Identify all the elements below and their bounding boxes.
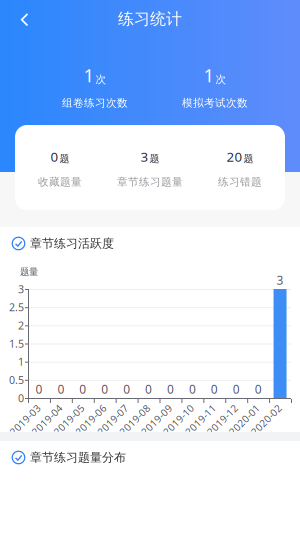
staticText: 0: [123, 381, 130, 397]
staticText: 题: [243, 152, 253, 165]
staticText: 0: [167, 381, 174, 397]
staticText: 1: [18, 354, 24, 369]
staticText: 2.5: [9, 300, 24, 314]
staticText: 题量: [20, 266, 38, 278]
staticText: 章节练习题量: [117, 175, 183, 189]
staticText: 1.5: [9, 336, 24, 351]
staticText: 章节练习题量分布: [30, 450, 126, 465]
staticText: 2: [18, 318, 24, 333]
staticText: 2019-10: [159, 413, 198, 427]
staticText: 收藏题量: [38, 175, 82, 189]
staticText: 2020-01: [225, 413, 264, 427]
staticText: 0: [57, 381, 64, 397]
button[interactable]: 章节练习题量分布: [0, 441, 300, 474]
staticText: 3: [276, 272, 283, 288]
staticText: 2019-09: [137, 413, 176, 427]
staticText: 0.5: [9, 373, 24, 387]
staticText: 0: [79, 381, 86, 397]
staticText: 1: [203, 62, 214, 88]
staticText: 练习错题: [218, 175, 262, 189]
staticText: 次: [95, 73, 106, 86]
staticText: 2019-07: [93, 413, 132, 427]
staticText: 2019-04: [28, 413, 67, 427]
staticText: 题: [59, 152, 69, 165]
staticText: 2019-11: [181, 413, 220, 427]
staticText: 2019-06: [72, 413, 111, 427]
staticText: 2019-05: [50, 413, 89, 427]
staticText: 1: [83, 62, 94, 88]
staticText: 20: [226, 147, 242, 166]
staticText: 2019-12: [203, 413, 242, 427]
staticText: 3: [18, 282, 24, 296]
staticText: 0: [18, 391, 24, 405]
staticText: 2019-08: [115, 413, 154, 427]
staticText: 次: [215, 73, 226, 86]
staticText: 章节练习活跃度: [30, 236, 114, 251]
staticText: 组卷练习次数: [62, 96, 128, 110]
staticText: 练习统计: [118, 9, 182, 29]
button[interactable]: 章节练习活跃度: [0, 227, 300, 260]
button[interactable]: Back: [9, 5, 41, 35]
staticText: 2019-03: [6, 413, 45, 427]
staticText: 0: [35, 381, 42, 397]
staticText: 模拟考试次数: [182, 96, 248, 110]
staticText: 0: [145, 381, 152, 397]
staticText: 题: [149, 152, 159, 165]
staticText: 0: [233, 381, 240, 397]
staticText: 2020-02: [247, 413, 286, 427]
staticText: 0: [101, 381, 108, 397]
staticText: 0: [189, 381, 196, 397]
staticText: 0: [211, 381, 218, 397]
staticText: 0: [50, 147, 58, 166]
staticText: 0: [255, 381, 262, 397]
staticText: 3: [140, 147, 148, 166]
